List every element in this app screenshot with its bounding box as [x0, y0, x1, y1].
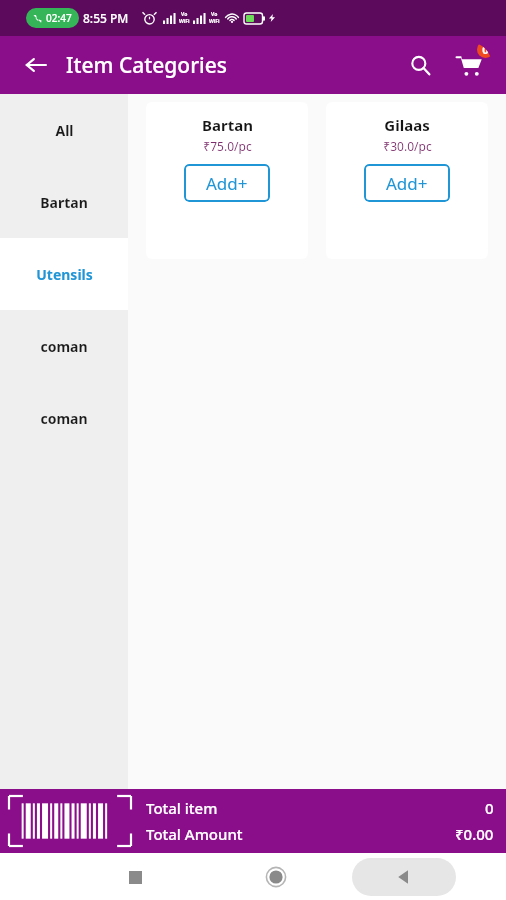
button[interactable]: Search [398, 43, 442, 87]
button[interactable]: Utensils [0, 238, 128, 310]
staticText: Bartan [202, 115, 253, 135]
button[interactable]: Back [352, 858, 456, 896]
staticText: coman [40, 337, 88, 356]
button[interactable]: Cart [446, 42, 492, 88]
button[interactable]: Add+ [184, 164, 270, 202]
staticText: Bartan [40, 193, 88, 212]
button[interactable]: Home [255, 856, 297, 898]
button[interactable]: Bartan [146, 102, 308, 259]
staticText: 8:55 PM [83, 10, 129, 26]
staticText: coman [40, 409, 88, 428]
button[interactable]: Gilaas [326, 102, 488, 259]
staticText: All [55, 121, 74, 140]
staticText: WiFi [209, 18, 220, 25]
staticText: Gilaas [384, 115, 430, 135]
staticText: 0 [482, 42, 489, 57]
staticText: Add+ [206, 172, 248, 195]
staticText: 02:47 [46, 11, 72, 25]
staticText: Utensils [36, 265, 93, 284]
staticText: ₹0.00 [455, 824, 494, 844]
button[interactable]: Scan barcode [8, 795, 132, 847]
button[interactable]: Recents [114, 856, 156, 898]
button[interactable]: All [0, 94, 128, 166]
staticText: WiFi [179, 18, 190, 25]
staticText: Total Amount [146, 824, 243, 844]
button[interactable]: coman [0, 310, 128, 382]
staticText: Total item [146, 798, 218, 818]
staticText: Item Categories [66, 51, 227, 80]
staticText: ₹75.0/pc [203, 138, 252, 154]
button[interactable]: Bartan [0, 166, 128, 238]
staticText: ₹30.0/pc [383, 138, 432, 154]
staticText: Vo [211, 11, 218, 18]
staticText: 0 [485, 798, 494, 818]
button[interactable]: coman [0, 382, 128, 454]
button[interactable]: Back [14, 43, 58, 87]
button[interactable]: Add+ [364, 164, 450, 202]
staticText: Add+ [386, 172, 428, 195]
staticText: Vo [181, 11, 188, 18]
